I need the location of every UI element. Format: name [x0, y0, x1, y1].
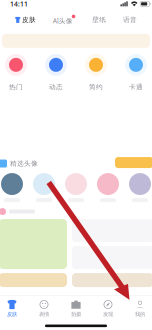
staticText: 语音 — [123, 16, 137, 24]
button[interactable] — [129, 173, 151, 202]
staticText: 表情 — [39, 311, 49, 318]
staticText: 动态 — [49, 83, 63, 91]
staticText: 简约 — [89, 83, 103, 91]
button[interactable] — [65, 173, 87, 202]
staticText: 14:11 — [10, 0, 28, 8]
button[interactable]: 动态 — [40, 54, 72, 91]
button[interactable]: 卡通 — [120, 54, 152, 91]
staticText: 发现 — [103, 311, 113, 318]
staticText: AI头像 — [53, 16, 73, 25]
button[interactable]: 语音 — [123, 13, 137, 26]
staticText: 拍摄 — [71, 311, 81, 318]
button[interactable]: AI头像 — [53, 13, 75, 26]
button[interactable]: 简约 — [80, 54, 112, 91]
staticText: 卡通 — [129, 83, 143, 91]
button[interactable]: 皮肤 — [15, 13, 36, 26]
button[interactable]: 皮肤 — [0, 299, 28, 318]
button[interactable]: 壁纸 — [92, 13, 106, 26]
staticText: 皮肤 — [7, 311, 17, 318]
button[interactable] — [1, 173, 23, 202]
button[interactable]: 热门 — [0, 54, 32, 91]
button[interactable] — [33, 173, 55, 202]
staticText: 精选头像 — [10, 159, 38, 168]
staticText: 壁纸 — [92, 16, 106, 24]
button[interactable]: 表情 — [28, 299, 60, 318]
staticText: 我的 — [135, 311, 145, 318]
button[interactable]: 我的 — [124, 299, 152, 318]
button[interactable]: 拍摄 — [60, 299, 92, 318]
button[interactable] — [97, 173, 119, 202]
button[interactable]: 发现 — [92, 299, 124, 318]
staticText: 皮肤 — [22, 16, 36, 24]
staticText: 热门 — [9, 83, 23, 91]
